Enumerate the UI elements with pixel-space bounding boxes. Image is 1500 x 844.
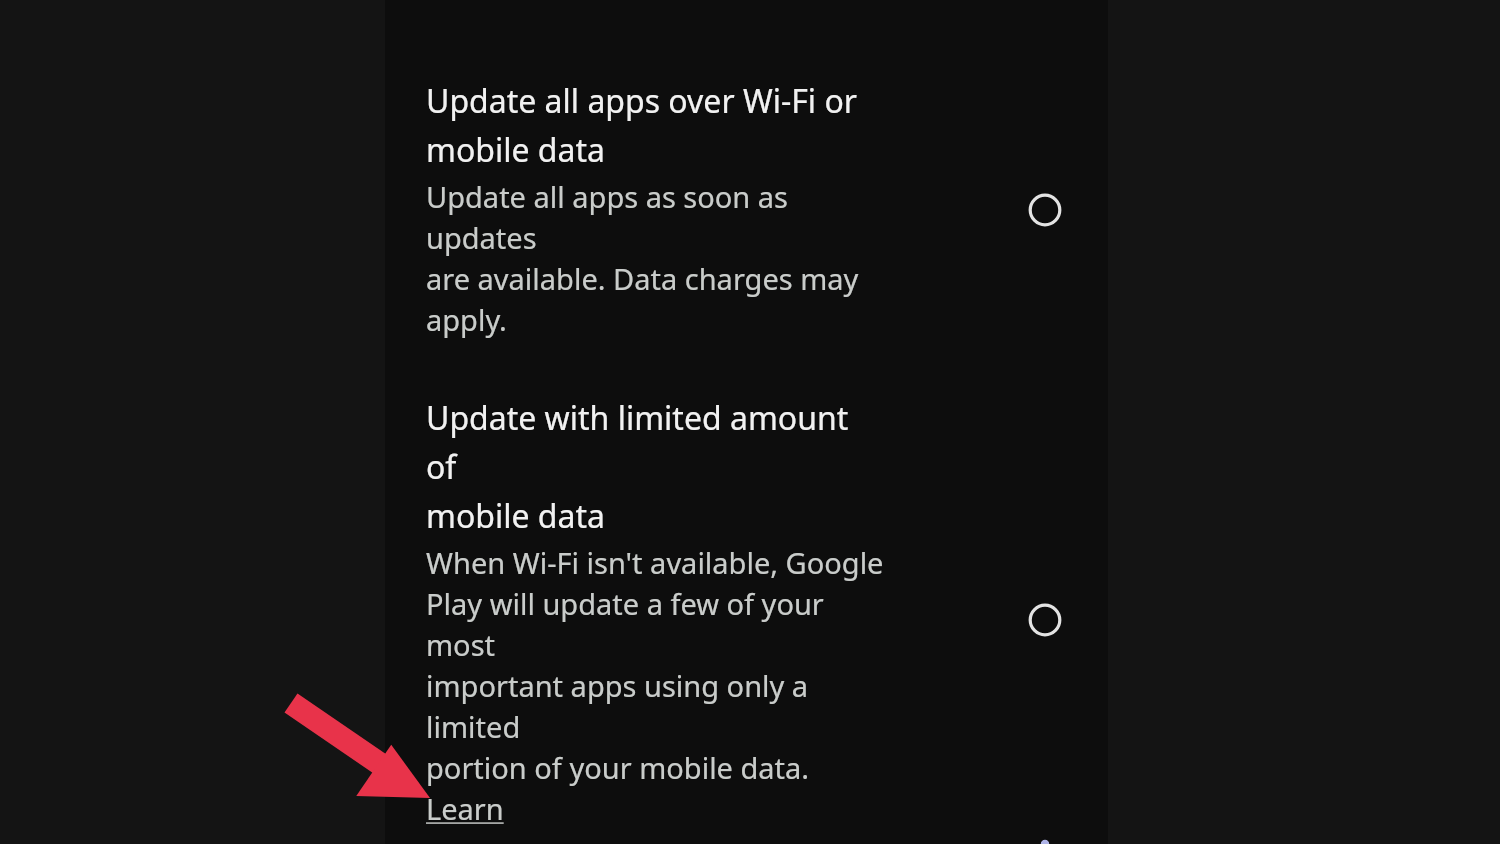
- button[interactable]: Update with limited amount of mobile dat…: [385, 396, 1108, 844]
- other: Select Update all apps over Wi-Fi or mob…: [1017, 182, 1073, 238]
- staticText: Update all apps as soon as updates are a…: [426, 177, 885, 340]
- staticText: When Wi-Fi isn't available, Google Play …: [426, 543, 885, 844]
- staticText: Update all apps over Wi-Fi or mobile dat…: [426, 79, 858, 172]
- button[interactable]: Update all apps over Wi-Fi or mobile dat…: [385, 79, 1108, 340]
- staticText: Update with limited amount of mobile dat…: [426, 396, 885, 538]
- other: Select Update with limited amount of mob…: [1017, 592, 1073, 648]
